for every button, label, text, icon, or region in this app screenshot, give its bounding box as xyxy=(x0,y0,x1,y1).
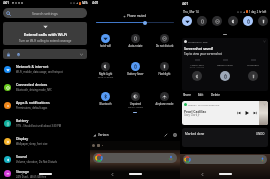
staticText: 54% xyxy=(82,1,88,5)
staticText: Tap to view your screenshot xyxy=(184,52,222,56)
staticText: On at 11:00PM xyxy=(121,106,150,109)
button[interactable] xyxy=(129,173,142,175)
button[interactable]: Quick setting xyxy=(182,16,192,26)
staticText: Night Light xyxy=(91,72,120,76)
button[interactable] xyxy=(96,20,174,25)
button[interactable]: Spotify • 02 of the Good Shit xyxy=(182,101,268,125)
button[interactable]: Edit xyxy=(164,133,168,137)
staticText: On at 11:00 PM xyxy=(91,76,120,79)
button[interactable]: Night Light xyxy=(182,38,268,91)
staticText: Spotify • 02 of the Good Shit xyxy=(188,103,220,106)
staticText: Bluetooth, driving mode, NFC xyxy=(16,88,52,92)
staticText: Apps & notifications xyxy=(16,100,50,105)
button[interactable]: Night Light xyxy=(91,62,120,79)
button[interactable]: Search settings xyxy=(3,8,87,18)
button[interactable]: Next xyxy=(253,111,257,115)
staticText: On at 11:00 PM xyxy=(183,66,211,69)
staticText: Battery Saver xyxy=(121,72,150,76)
staticText: 1 day, 2 hr left xyxy=(249,10,267,14)
staticText: Screenshot saved! xyxy=(184,46,214,51)
button[interactable]: Connected devices xyxy=(0,78,90,96)
staticText: Verizon xyxy=(98,133,109,137)
button[interactable]: Edit xyxy=(198,93,204,97)
button[interactable]: Display xyxy=(0,132,90,150)
button[interactable]: Network & internet xyxy=(0,60,90,78)
staticText: Flashlight xyxy=(239,63,267,66)
staticText: Auto-rotate xyxy=(121,44,150,48)
staticText: Network & internet xyxy=(16,64,49,69)
button[interactable]: Quick setting xyxy=(258,16,268,26)
button[interactable]: Extend calls with Wi-Fi xyxy=(3,22,87,45)
staticText: Bluetooth xyxy=(91,102,120,106)
staticText: Pearl Cadillac xyxy=(184,109,207,113)
staticText: Unpaired xyxy=(121,102,150,106)
button[interactable] xyxy=(93,153,177,163)
button[interactable]: Unpaired xyxy=(121,92,150,109)
staticText: Wallpaper, sleep, font size xyxy=(16,142,48,146)
staticText: Connected devices xyxy=(16,82,48,87)
staticText: Search settings xyxy=(32,11,58,16)
button[interactable]: Sound xyxy=(0,150,90,168)
staticText: Phone muted xyxy=(127,14,147,18)
button[interactable]: Airplane mode xyxy=(150,92,179,106)
staticText: Display xyxy=(16,136,29,141)
button[interactable]: Quick setting xyxy=(197,16,207,26)
staticText: Turn on Wi-Fi calling to extend coverage xyxy=(19,39,72,43)
button[interactable]: Quick setting xyxy=(228,16,238,26)
button[interactable] xyxy=(3,49,87,59)
staticText: Sound xyxy=(16,154,27,159)
staticText: UNDO xyxy=(256,132,265,136)
staticText: Battery Saver xyxy=(211,63,239,66)
staticText: 97% - Should last until about 3:30 PM xyxy=(16,124,62,128)
staticText: 4:01 xyxy=(92,1,99,5)
staticText: Gary Clark Jr xyxy=(184,113,200,117)
button[interactable]: Settings xyxy=(173,133,177,137)
staticText: Flashlight xyxy=(150,72,179,76)
button[interactable]: Marked done xyxy=(182,128,268,147)
staticText: 4:01 xyxy=(3,1,9,5)
button[interactable]: Previous xyxy=(237,111,241,115)
button[interactable]: Battery xyxy=(0,114,90,132)
staticText: 4:01 xyxy=(182,2,189,6)
button[interactable]: Share xyxy=(183,93,191,97)
button[interactable]: Quick setting xyxy=(243,16,253,26)
button[interactable]: Back xyxy=(200,172,205,177)
button[interactable]: Back xyxy=(20,172,25,177)
staticText: Wi-Fi, mobile, data usage, and hotspot xyxy=(16,70,63,74)
button[interactable] xyxy=(219,173,232,175)
staticText: Screenshot • now xyxy=(188,40,208,43)
button[interactable]: Delete xyxy=(211,93,220,97)
button[interactable]: Auto-rotate xyxy=(121,34,150,48)
button[interactable]: Flashlight xyxy=(150,62,179,76)
button[interactable]: Play xyxy=(244,110,250,116)
button[interactable]: Battery Saver xyxy=(121,62,150,76)
staticText: Do not disturb xyxy=(150,44,179,48)
staticText: Night Light xyxy=(183,63,211,66)
staticText: hotel wifi xyxy=(91,44,120,48)
button[interactable]: Do not disturb xyxy=(150,34,179,48)
staticText: Thu, Mar 14 xyxy=(183,10,199,14)
button[interactable]: Back xyxy=(110,172,115,177)
button[interactable]: Storage xyxy=(0,168,90,179)
staticText: Battery xyxy=(16,118,29,123)
staticText: Permissions, default apps xyxy=(16,106,48,110)
button[interactable] xyxy=(183,155,267,164)
button[interactable]: Bluetooth xyxy=(91,92,120,106)
button[interactable]: Quick setting xyxy=(212,16,222,26)
staticText: Volume, vibration, Do Not Disturb xyxy=(16,160,58,164)
staticText: Extend calls with Wi-Fi xyxy=(24,32,68,37)
button[interactable] xyxy=(39,173,52,175)
button[interactable]: hotel wifi xyxy=(91,34,120,48)
staticText: Storage xyxy=(16,169,29,174)
staticText: 24% used - 48.65 GB free xyxy=(16,175,47,179)
staticText: Airplane mode xyxy=(150,102,179,106)
staticText: Marked done xyxy=(185,132,205,136)
button[interactable]: Apps & notifications xyxy=(0,96,90,114)
